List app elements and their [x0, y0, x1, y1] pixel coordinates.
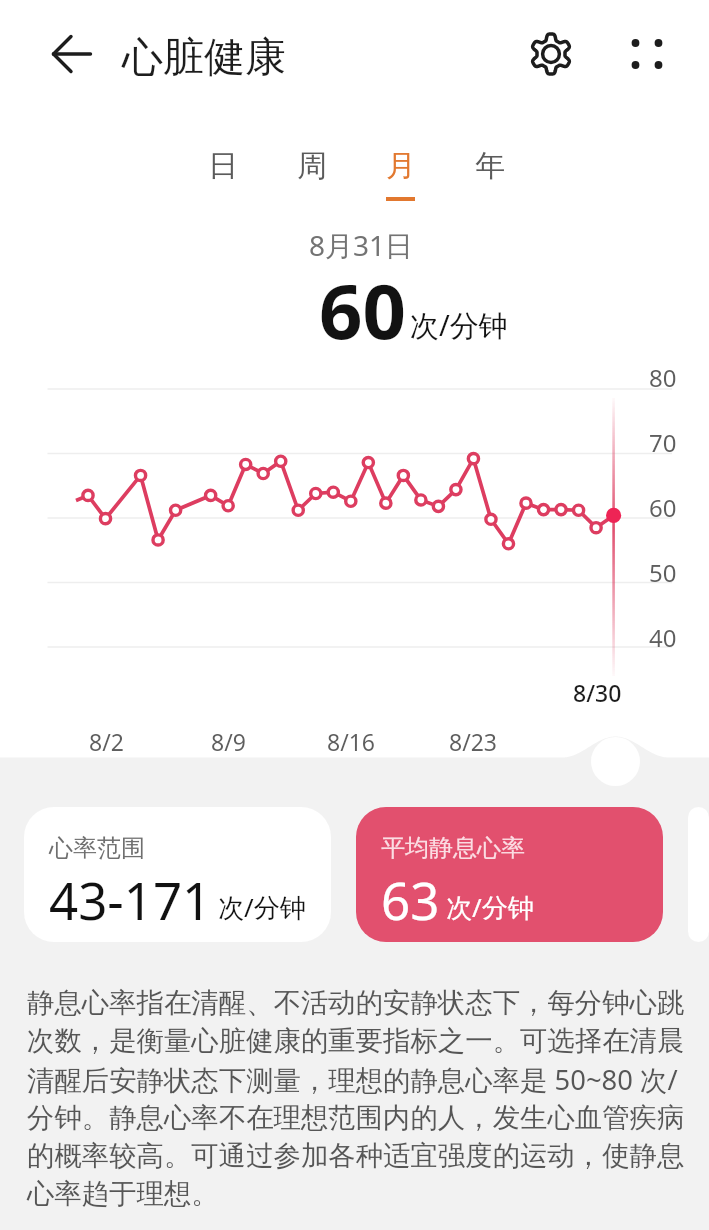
- staticText: 8/23: [449, 726, 498, 757]
- staticText: 心率范围: [49, 833, 145, 863]
- staticText: 8/2: [89, 726, 124, 757]
- staticText: 平均静息心率: [381, 833, 525, 863]
- button[interactable]: More options: [619, 26, 675, 82]
- staticText: 43-171: [49, 865, 212, 934]
- staticText: 8/30: [573, 677, 622, 708]
- staticText: 次/分钟: [218, 889, 306, 925]
- staticText: 心脏健康: [122, 32, 286, 84]
- button[interactable]: Back: [46, 28, 98, 80]
- button[interactable]: 年: [445, 145, 534, 203]
- staticText: 60: [649, 491, 677, 524]
- button[interactable]: 周: [267, 145, 356, 203]
- staticText: 周: [297, 147, 327, 185]
- staticText: 50: [649, 556, 677, 589]
- staticText: 70: [649, 426, 677, 459]
- staticText: 静息心率指在清醒、不活动的安静状态下，每分钟心跳次数，是衡量心脏健康的重要指标之…: [27, 986, 687, 1212]
- staticText: 年: [475, 147, 505, 185]
- staticText: 8/16: [327, 726, 376, 757]
- staticText: 8/9: [211, 726, 246, 757]
- staticText: 次/分钟: [446, 889, 534, 925]
- button[interactable]: 平均静息心率: [356, 807, 663, 942]
- staticText: 60: [319, 258, 406, 362]
- staticText: 80: [649, 361, 677, 394]
- button[interactable]: 心率范围: [24, 807, 331, 942]
- button[interactable]: 月: [356, 145, 445, 203]
- button[interactable]: Settings: [520, 23, 582, 85]
- staticText: 8月31日: [309, 226, 414, 264]
- staticText: 月: [386, 147, 416, 185]
- button[interactable]: 日: [178, 145, 267, 203]
- staticText: 63: [381, 865, 440, 934]
- staticText: 次/分钟: [410, 305, 508, 345]
- staticText: 日: [208, 147, 238, 185]
- staticText: 40: [649, 621, 677, 654]
